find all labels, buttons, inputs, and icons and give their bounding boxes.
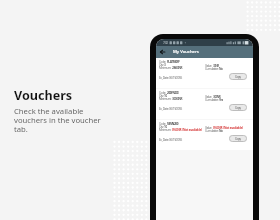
staticText: 10: [164, 94, 167, 97]
staticText: Code:: [159, 91, 167, 94]
staticText: Ex_Date: 06/19/2055: [159, 76, 183, 80]
button[interactable]: Copy: [229, 73, 247, 80]
staticText: Minimum:: [159, 97, 172, 100]
button[interactable]: Code:: [156, 120, 253, 150]
staticText: 10: [164, 125, 167, 128]
staticText: 0%INR (Not available): [172, 128, 202, 131]
staticText: Yes: [219, 98, 223, 101]
staticText: Minimum:: [159, 128, 172, 131]
button[interactable]: Back: [156, 46, 169, 58]
button[interactable]: Code:: [156, 58, 253, 88]
staticText: 30INR: [213, 95, 221, 98]
staticText: Qty:: [159, 125, 164, 128]
staticText: Copy: [235, 137, 241, 141]
staticText: Value:: [205, 95, 213, 98]
staticText: 200FNICE: [167, 91, 179, 94]
staticText: Code:: [159, 60, 167, 63]
staticText: 3000INR: [172, 97, 183, 100]
staticText: 2840INR: [172, 66, 183, 69]
staticText: 7:02: [163, 41, 168, 45]
staticText: 0%INR (Not available): [213, 126, 243, 129]
staticText: FLAT500FF: [167, 60, 180, 63]
staticText: Copy: [235, 106, 241, 110]
staticText: 3INR: [213, 64, 219, 67]
staticText: Value:: [205, 126, 213, 129]
staticText: Qty:: [159, 63, 164, 66]
staticText: No: [219, 129, 223, 132]
staticText: Copy: [235, 75, 241, 79]
staticText: 5BVN200: [167, 122, 179, 125]
staticText: Minimum:: [159, 66, 172, 69]
staticText: Vouchers: [14, 87, 73, 104]
staticText: Cumulative:: [205, 67, 219, 70]
staticText: Value:: [205, 64, 213, 67]
staticText: No: [219, 67, 223, 70]
staticText: 3: [164, 63, 166, 66]
staticText: Ex_Date: 06/19/2055: [159, 107, 183, 111]
button[interactable]: Copy: [229, 135, 247, 142]
staticText: Cumulative:: [205, 98, 219, 101]
staticText: Code:: [159, 122, 167, 125]
staticText: Cumulative:: [205, 129, 219, 132]
staticText: Qty:: [159, 94, 164, 97]
button[interactable]: Code:: [156, 89, 253, 119]
button[interactable]: Copy: [229, 104, 247, 111]
staticText: Ex_Date: 06/19/2055: [159, 138, 183, 142]
staticText: Check the available vouchers in the vouc…: [14, 106, 101, 134]
staticText: My Vouchers: [173, 49, 199, 55]
